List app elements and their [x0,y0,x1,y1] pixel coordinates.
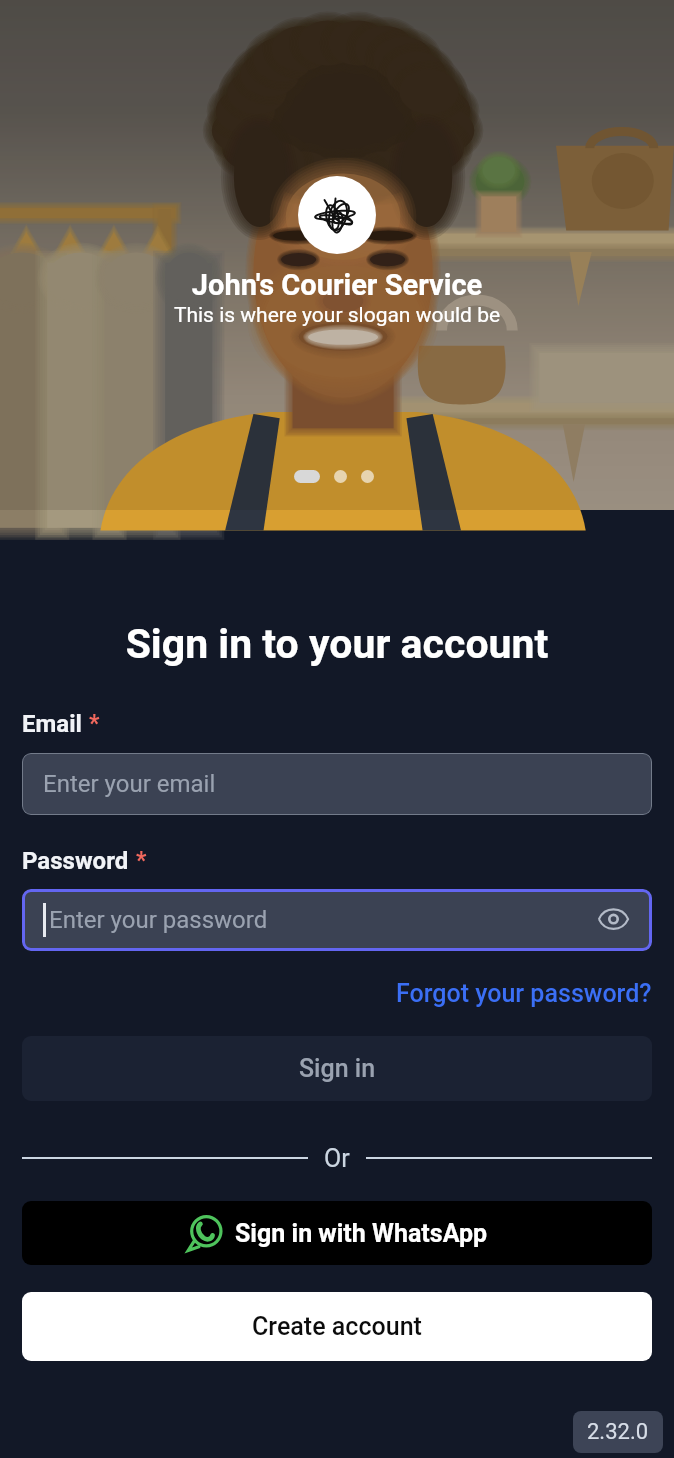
staticText: Create account [252,1312,422,1341]
button[interactable]: Enter your password [22,889,652,951]
button[interactable]: Forgot your password? [396,979,652,1008]
staticText: Password [22,847,129,875]
staticText: Sign in [299,1054,376,1083]
staticText: Or [324,1144,350,1173]
staticText: This is where your slogan would be [0,303,674,328]
staticText: Enter your password [49,906,268,934]
button[interactable]: Show password [591,898,635,942]
staticText: Email [22,710,82,738]
staticText: Sign in with WhatsApp [235,1219,488,1248]
button[interactable]: Sign in [22,1036,652,1101]
staticText: Enter your email [43,770,216,798]
button[interactable]: Sign in with WhatsApp [22,1201,652,1265]
staticText: John's Courier Service [0,268,674,302]
button[interactable]: Create account [22,1292,652,1361]
staticText: * [136,847,147,874]
staticText: 2.32.0 [587,1419,649,1445]
staticText: * [89,710,100,737]
button[interactable]: Enter your email [22,753,652,815]
staticText: Sign in to your account [22,620,652,668]
staticText: Forgot your password? [396,979,652,1008]
